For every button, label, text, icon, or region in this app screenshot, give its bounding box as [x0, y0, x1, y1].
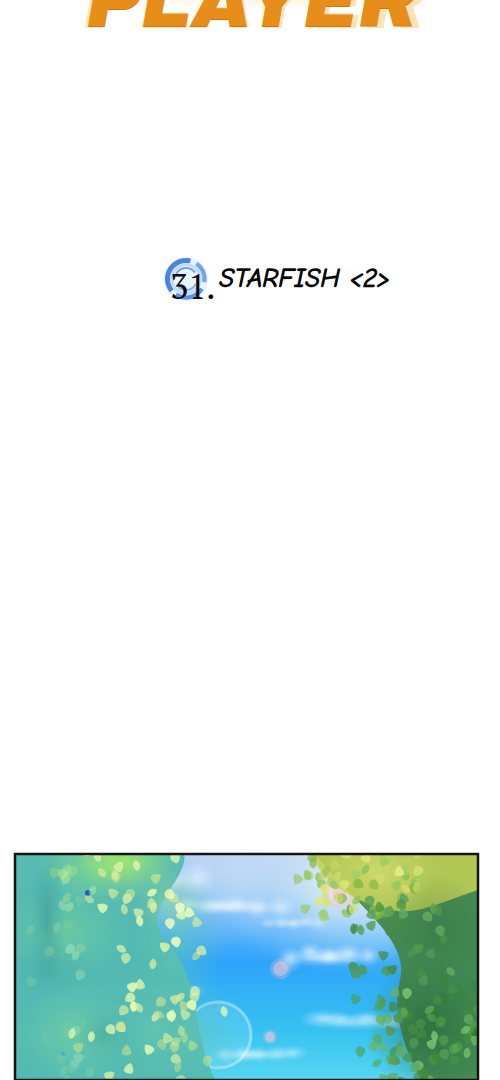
staticText: PLAYER: [83, 0, 425, 45]
staticText: STARFISH <2>: [219, 262, 390, 294]
staticText: PLAYER: [86, 0, 417, 43]
staticText: 31.: [170, 263, 216, 309]
staticText: PLAYER: [86, 0, 417, 42]
